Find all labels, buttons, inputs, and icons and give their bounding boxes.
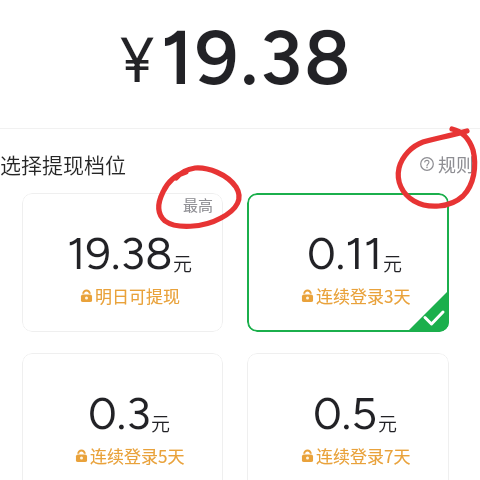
staticText: 0.5 <box>313 386 378 440</box>
staticText: 选择提现档位 <box>0 149 126 179</box>
button[interactable]: 0.3 <box>22 353 223 480</box>
staticText: 连续登录5天 <box>90 443 185 468</box>
staticText: 0.3 <box>88 386 151 440</box>
staticText: 元 <box>383 249 403 277</box>
staticText: 规则 <box>438 151 474 177</box>
staticText: 明日可提现 <box>95 283 180 308</box>
button[interactable]: 0.11 <box>247 193 449 332</box>
button[interactable]: 0.5 <box>247 353 449 480</box>
staticText: 19.38 <box>161 12 353 103</box>
staticText: 19.38 <box>67 226 173 280</box>
staticText: 元 <box>173 249 193 277</box>
button[interactable]: 规则 <box>420 151 474 177</box>
staticText: 元 <box>151 409 171 437</box>
button[interactable]: 最高 <box>22 193 223 332</box>
staticText: 最高 <box>183 194 214 216</box>
staticText: 连续登录3天 <box>316 283 411 308</box>
staticText: 连续登录7天 <box>316 443 411 468</box>
staticText: 元 <box>378 409 398 437</box>
staticText: 0.11 <box>307 226 383 280</box>
staticText: ¥ <box>120 22 155 98</box>
